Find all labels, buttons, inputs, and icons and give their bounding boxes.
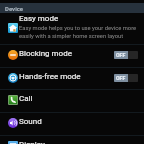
button[interactable]: Toggle off [114, 74, 138, 82]
staticText: Device [5, 5, 24, 12]
staticText: Easy mode helps you to use your device m… [19, 25, 144, 39]
button[interactable]: Toggle off [114, 51, 138, 59]
staticText: OFF [116, 52, 126, 58]
button[interactable]: Easy mode [0, 13, 144, 44]
staticText: Sound [19, 117, 42, 126]
staticText: Hands-free mode [19, 72, 81, 81]
staticText: Blocking mode [19, 49, 72, 58]
staticText: Easy mode [19, 14, 59, 23]
button[interactable]: Sound [0, 112, 144, 135]
button[interactable]: Display [0, 135, 144, 144]
staticText: Display [19, 140, 45, 144]
button[interactable]: Hands-free mode [0, 67, 144, 90]
staticText: OFF [116, 75, 126, 81]
button[interactable]: Blocking mode [0, 44, 144, 67]
button[interactable]: Call [0, 89, 144, 112]
staticText: Call [19, 94, 33, 103]
